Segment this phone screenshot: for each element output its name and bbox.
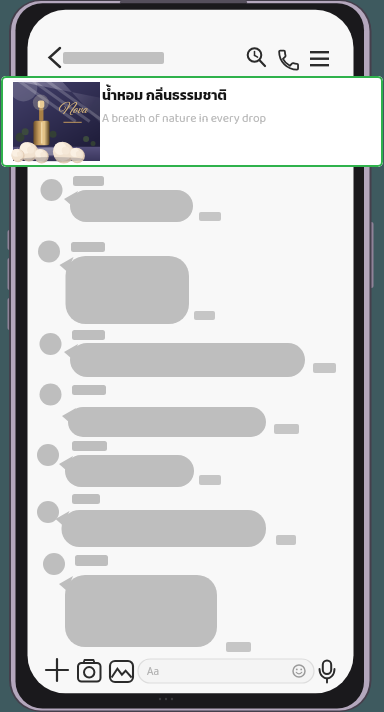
button[interactable] xyxy=(242,42,270,70)
button[interactable] xyxy=(44,44,68,72)
button[interactable]: Nova xyxy=(1,76,383,167)
button[interactable] xyxy=(107,656,136,684)
staticText: Aa xyxy=(147,664,159,678)
staticText: A breath of nature in every drop xyxy=(102,109,267,128)
button[interactable] xyxy=(138,658,314,684)
button[interactable] xyxy=(274,44,302,72)
button[interactable] xyxy=(75,656,104,684)
staticText: Nova xyxy=(58,101,87,119)
button[interactable] xyxy=(305,46,334,70)
button[interactable] xyxy=(44,657,70,683)
staticText: น้ำหอม กลิ่นธรรมชาติ xyxy=(102,85,227,106)
button[interactable] xyxy=(316,656,340,686)
